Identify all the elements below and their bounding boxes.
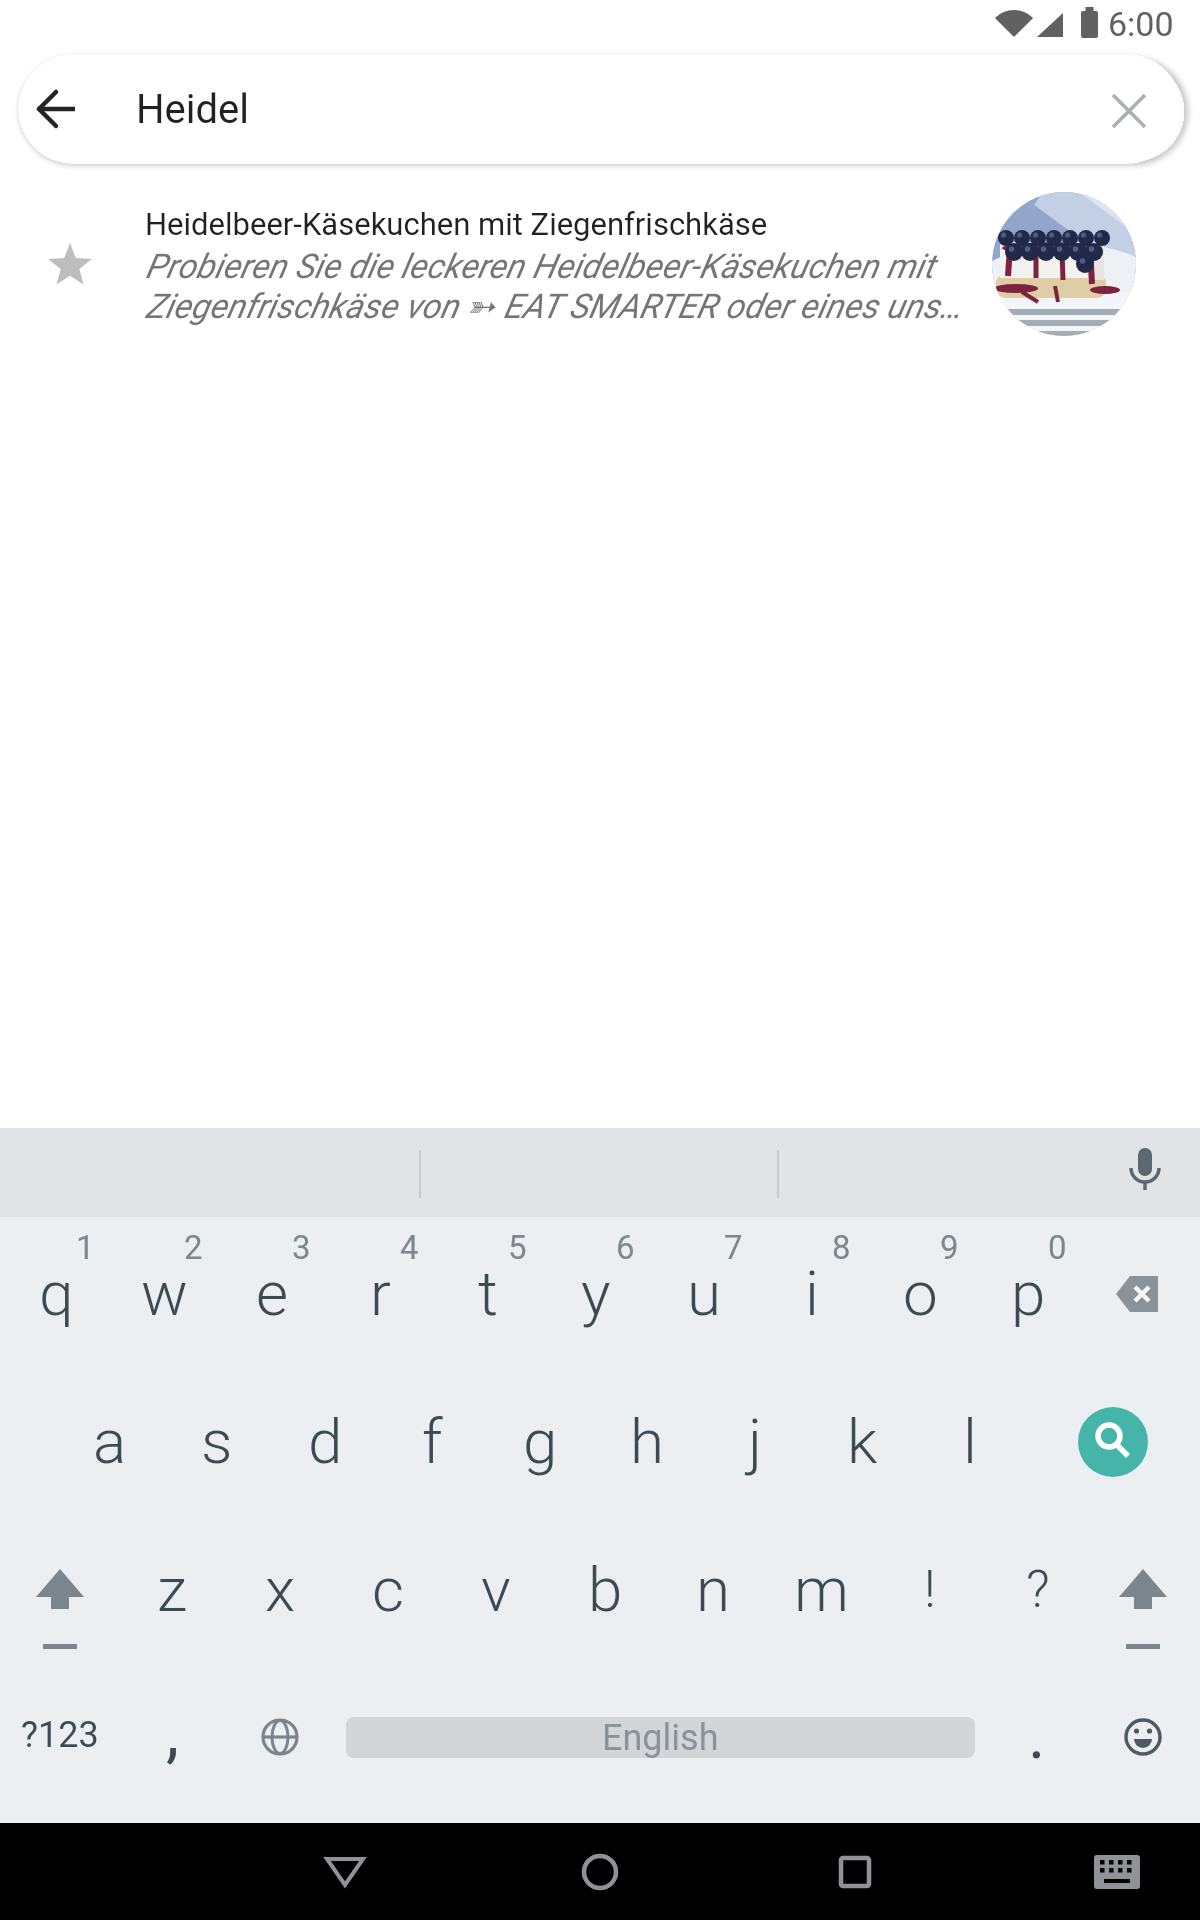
- staticText: w: [141, 1257, 188, 1330]
- staticText: .: [1028, 1697, 1046, 1774]
- staticText: l: [963, 1405, 977, 1478]
- staticText: h: [630, 1405, 665, 1478]
- staticText: u: [687, 1257, 722, 1330]
- staticText: q: [39, 1257, 74, 1330]
- staticText: ?123: [21, 1714, 99, 1756]
- staticText: c: [372, 1553, 404, 1626]
- staticText: Probieren Sie die leckeren Heidelbeer-Kä…: [145, 246, 962, 326]
- staticText: o: [903, 1257, 938, 1330]
- staticText: t: [478, 1257, 498, 1330]
- staticText: z: [157, 1553, 188, 1626]
- staticText: r: [370, 1257, 391, 1330]
- staticText: g: [523, 1405, 558, 1478]
- staticText: !: [924, 1559, 936, 1620]
- staticText: 0: [1048, 1228, 1067, 1267]
- staticText: 2: [184, 1228, 203, 1267]
- staticText: 7: [724, 1228, 743, 1267]
- staticText: i: [805, 1257, 819, 1330]
- staticText: 5: [508, 1228, 527, 1267]
- staticText: b: [588, 1553, 623, 1626]
- staticText: 9: [940, 1228, 959, 1267]
- staticText: ?: [1026, 1559, 1050, 1620]
- staticText: 8: [832, 1228, 851, 1267]
- staticText: m: [794, 1553, 849, 1626]
- staticText: p: [1011, 1257, 1046, 1330]
- staticText: ,: [166, 1694, 179, 1771]
- staticText: Heidel: [136, 86, 249, 133]
- staticText: f: [422, 1405, 443, 1478]
- staticText: s: [201, 1405, 233, 1478]
- staticText: 6: [616, 1228, 635, 1267]
- staticText: English: [602, 1717, 719, 1758]
- staticText: j: [748, 1405, 763, 1478]
- staticText: 1: [76, 1228, 95, 1267]
- staticText: d: [308, 1405, 343, 1478]
- staticText: Heidelbeer-Käsekuchen mit Ziegenfrischkä…: [145, 206, 768, 242]
- staticText: v: [481, 1553, 511, 1626]
- staticText: k: [847, 1405, 878, 1478]
- staticText: 3: [292, 1228, 311, 1267]
- staticText: n: [696, 1553, 731, 1626]
- staticText: 6:00: [1108, 4, 1174, 44]
- staticText: 4: [400, 1228, 419, 1267]
- staticText: a: [93, 1405, 127, 1478]
- staticText: y: [581, 1257, 611, 1330]
- staticText: x: [265, 1553, 296, 1626]
- staticText: e: [256, 1257, 289, 1330]
